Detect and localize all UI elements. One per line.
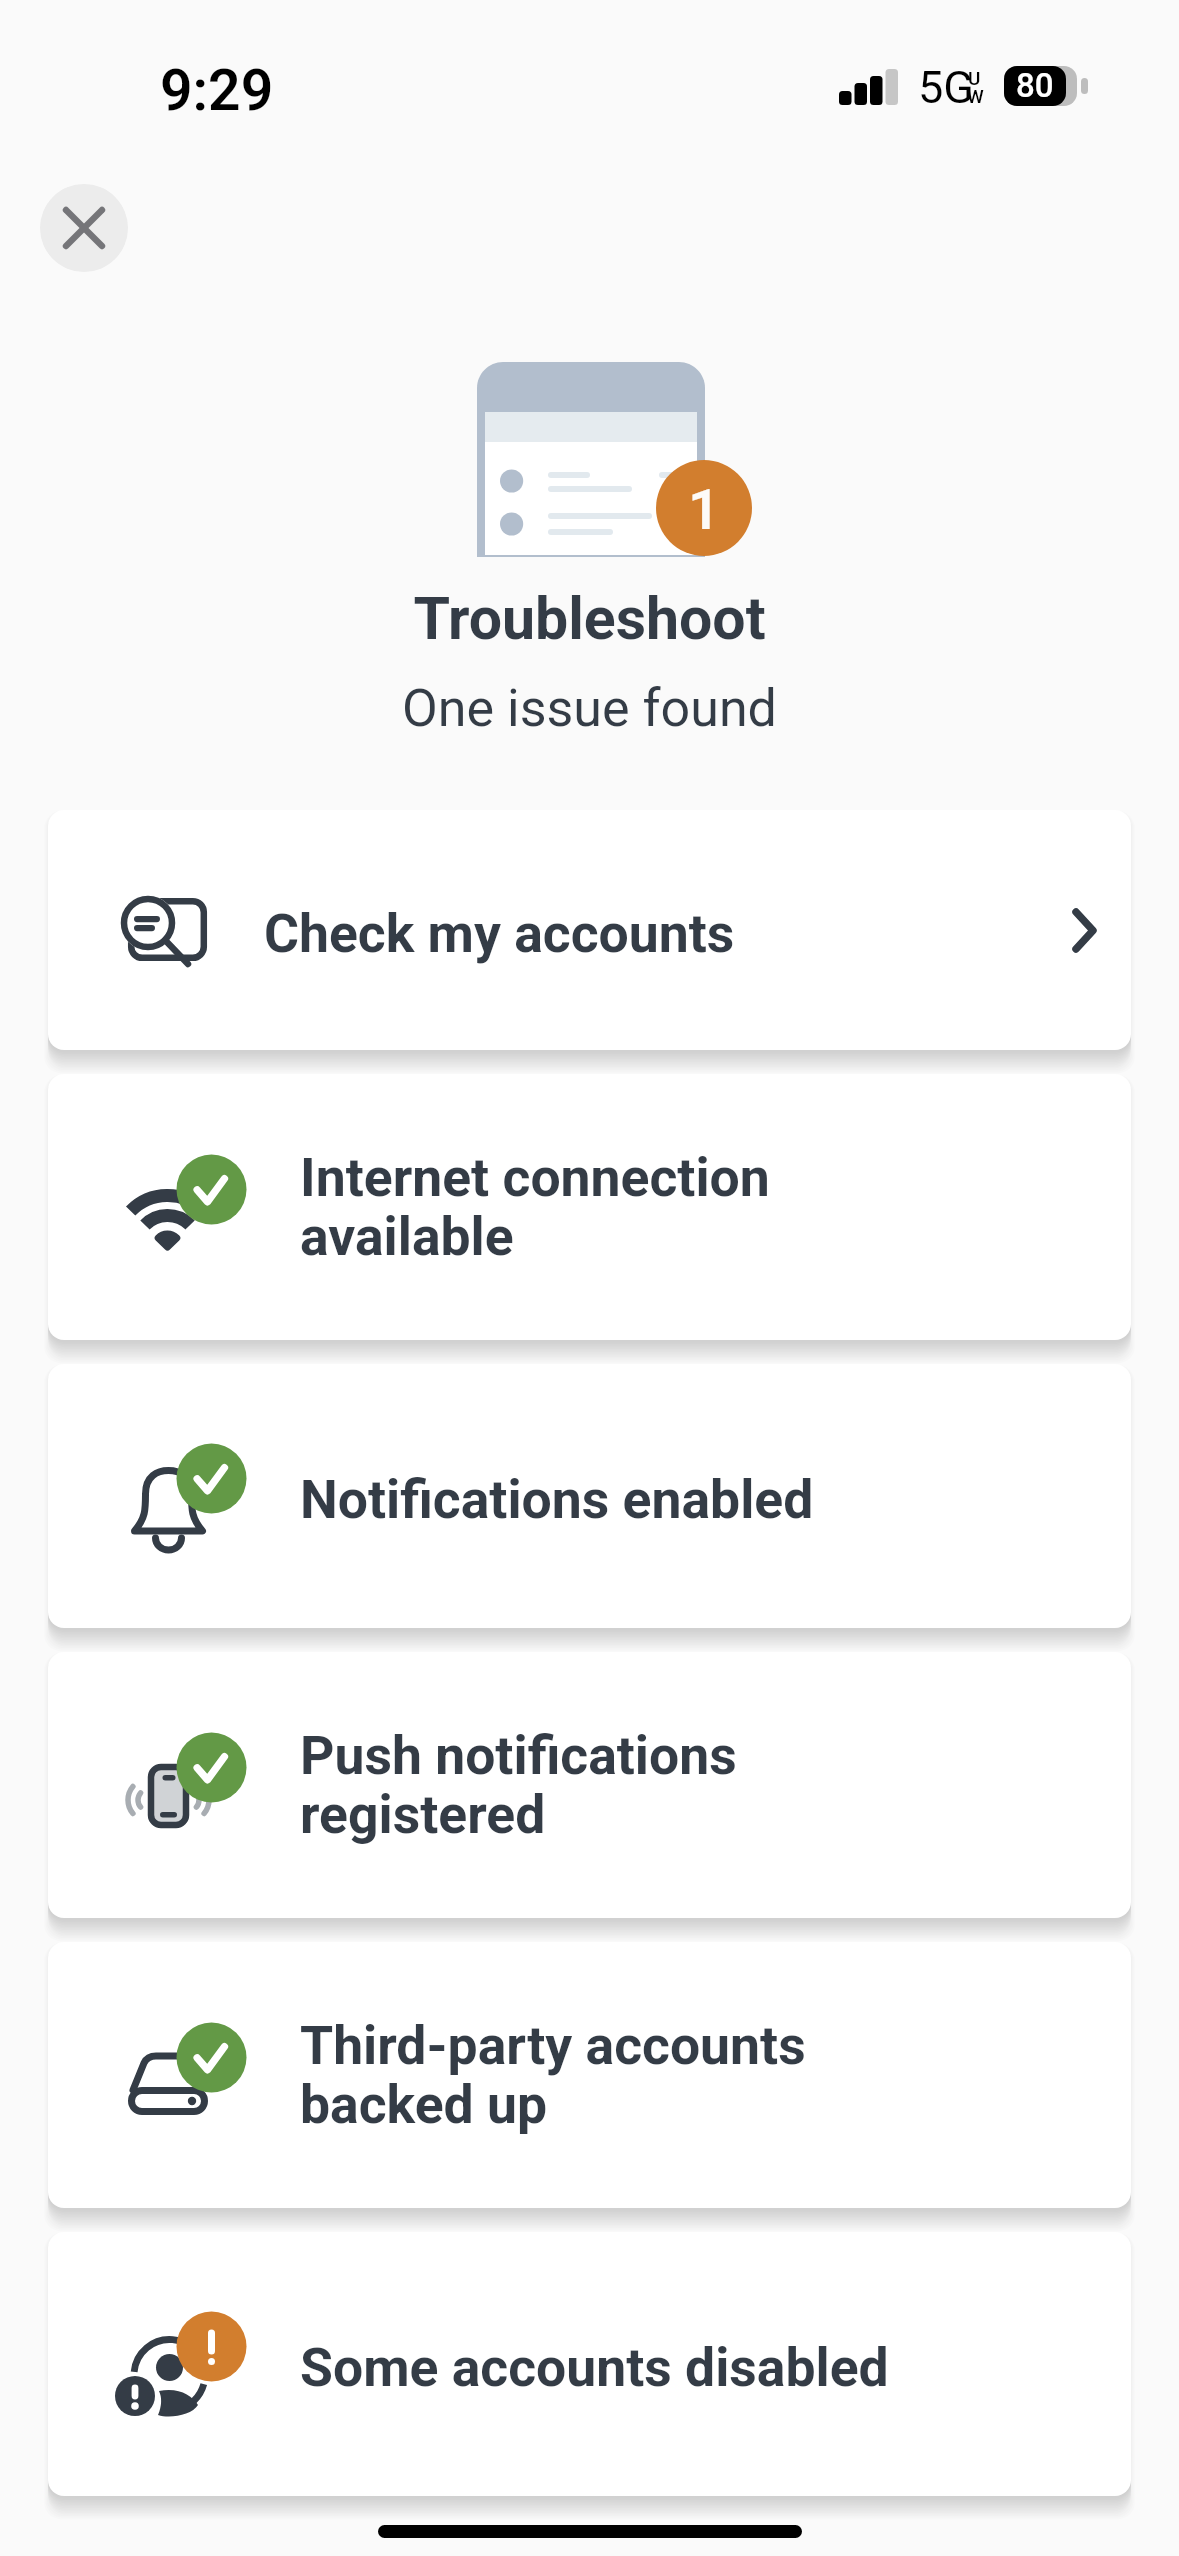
staticText: 80 bbox=[1016, 66, 1054, 105]
staticText: Check my accounts bbox=[264, 902, 984, 965]
button[interactable]: Close bbox=[40, 184, 128, 272]
staticText: Some accounts disabled bbox=[300, 2336, 1020, 2399]
staticText: 5G bbox=[918, 61, 974, 114]
button[interactable]: Some accounts disabled bbox=[48, 2232, 1131, 2496]
staticText: One issue found bbox=[0, 678, 1179, 739]
staticText: Notifications enabled bbox=[300, 1468, 1020, 1531]
staticText: 1 bbox=[688, 477, 720, 543]
button[interactable]: Push notifications registered bbox=[48, 1652, 1131, 1918]
staticText: Internet connection available bbox=[300, 1146, 1020, 1268]
button[interactable]: Third-party accounts backed up bbox=[48, 1942, 1131, 2208]
staticText: Third-party accounts backed up bbox=[300, 2014, 1020, 2136]
staticText: 9:29 bbox=[160, 57, 274, 124]
staticText: U bbox=[968, 67, 981, 89]
button[interactable]: Internet connection available bbox=[48, 1074, 1131, 1340]
staticText: Troubleshoot bbox=[0, 584, 1179, 653]
staticText: Push notifications registered bbox=[300, 1724, 1020, 1846]
button[interactable]: Notifications enabled bbox=[48, 1364, 1131, 1628]
staticText: W bbox=[967, 85, 984, 107]
button[interactable]: Check my accounts bbox=[48, 810, 1131, 1050]
